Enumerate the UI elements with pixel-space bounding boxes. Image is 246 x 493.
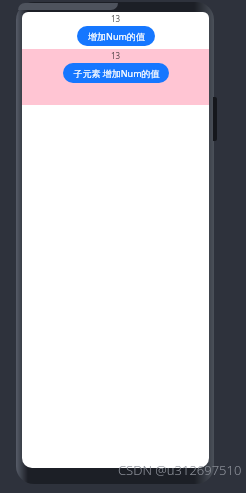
staticText: 13 [22, 13, 209, 24]
button[interactable]: 增加Num的值 [77, 26, 155, 46]
staticText: 13 [22, 50, 209, 61]
staticText: 子元素 增加Num的值 [73, 67, 160, 79]
button[interactable]: 子元素 增加Num的值 [63, 63, 169, 83]
staticText: 增加Num的值 [88, 30, 145, 42]
staticText: CSDN @u312697510 [118, 461, 242, 479]
